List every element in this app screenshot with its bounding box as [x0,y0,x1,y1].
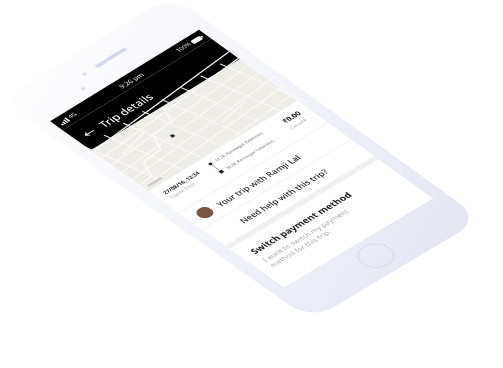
staticText: M-28, Ramnagar Extension, Ramnagar, Jaip… [214,120,283,162]
staticText: Your trip with Ramji Lal [213,153,304,209]
staticText: I want to switch my payment method for t… [260,207,358,268]
staticText: 100% [174,41,194,54]
button[interactable]: Switch payment method [230,159,421,279]
staticText: Switch payment method [247,189,355,256]
staticText: Need help with this trip? [236,167,331,225]
staticText: M-28, Ramnagar Extension, Ramnagar, Jaip… [225,128,294,170]
button[interactable]: Your trip with Ramji Lal [179,123,351,229]
staticText: 27/08/16, 12:34 pm [161,166,209,196]
staticText: Cancelled [288,116,310,130]
staticText: 9:26 pm [116,71,146,90]
staticText: ₹0.00 [279,109,304,125]
button[interactable]: Back [77,124,102,141]
staticText: Trip details [95,91,157,130]
staticText: Toyota Etios [168,181,198,200]
button[interactable]: Need help with this trip? [203,140,374,246]
staticText: 4G [66,111,80,120]
